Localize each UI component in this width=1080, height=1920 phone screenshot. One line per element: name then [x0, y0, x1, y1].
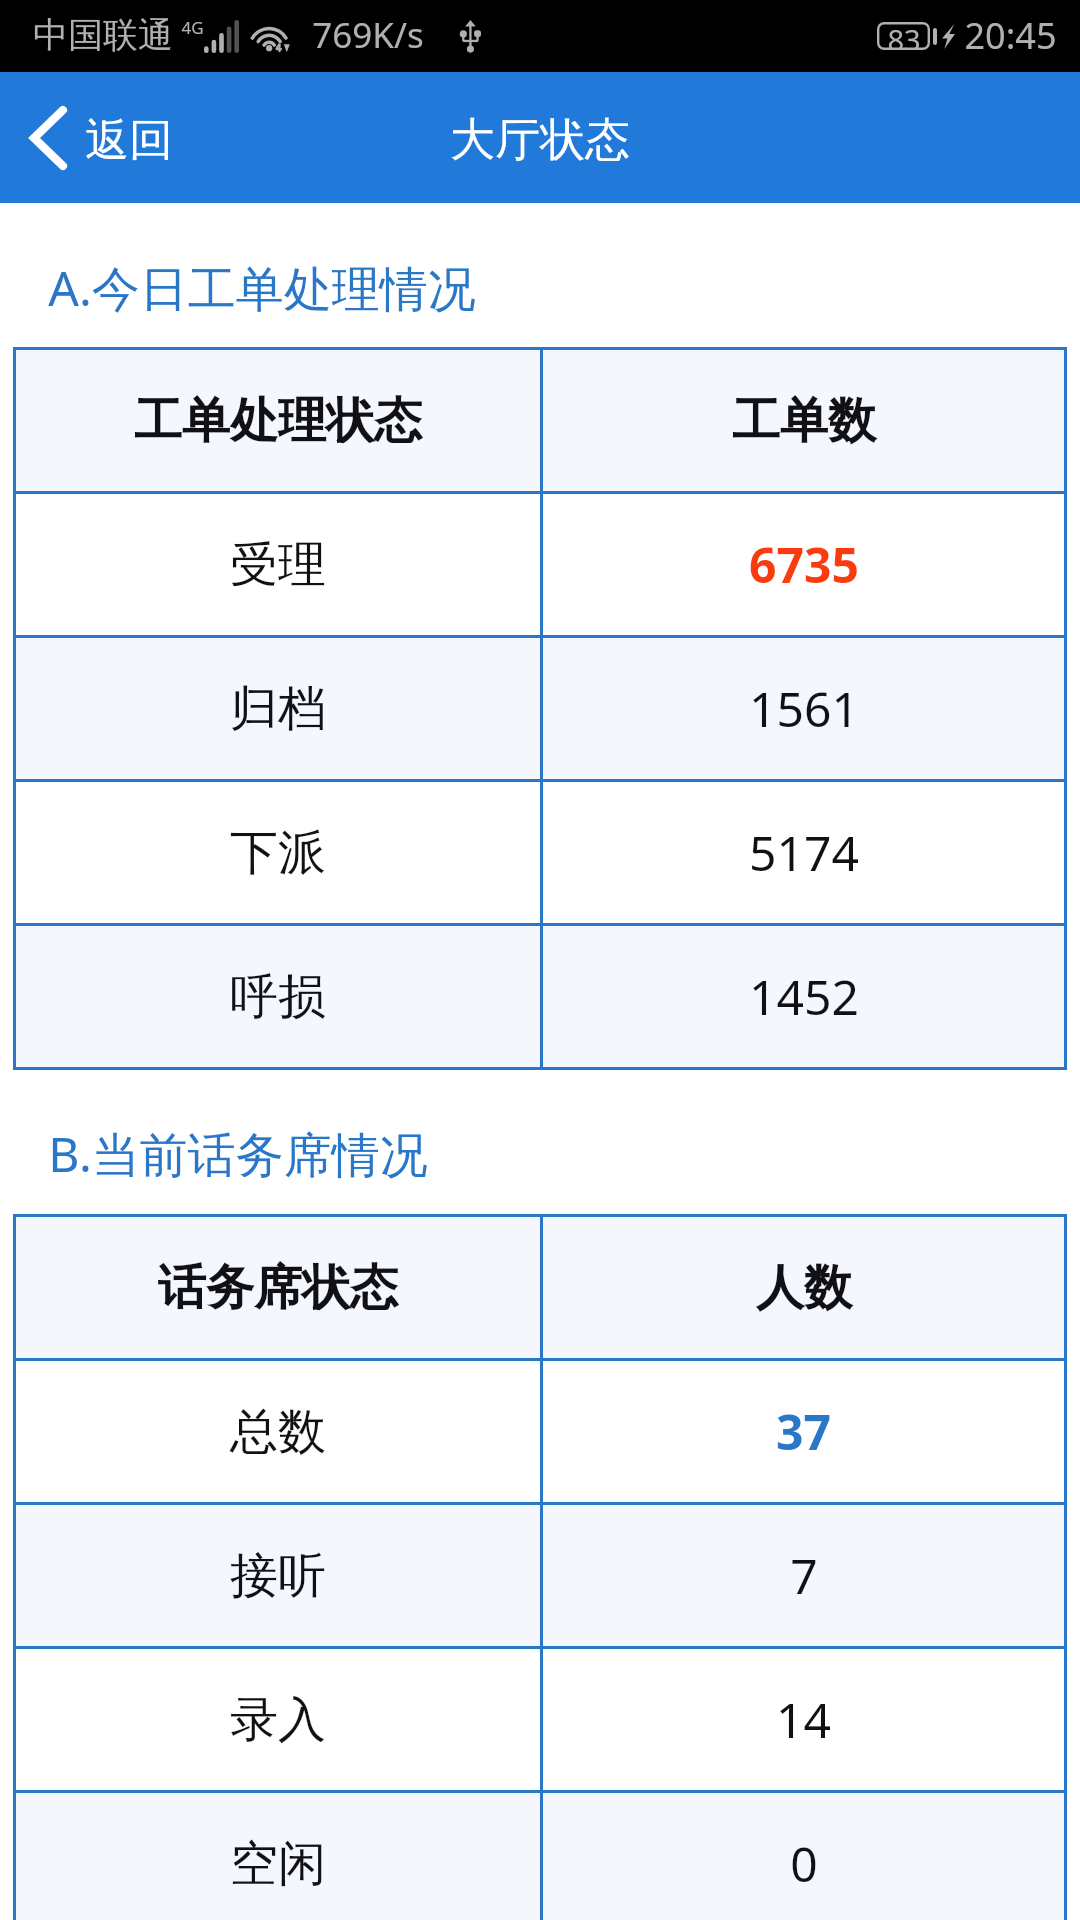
staticText: 83	[887, 20, 921, 48]
staticText: 1561	[749, 676, 859, 741]
staticText: 呼损	[230, 967, 326, 1027]
staticText: 0	[790, 1831, 818, 1896]
staticText: 20:45	[964, 11, 1057, 60]
staticText: 工单处理状态	[134, 391, 422, 451]
staticText: 37	[776, 1399, 831, 1464]
button[interactable]: 返回	[0, 72, 197, 203]
staticText: 769K/s	[312, 11, 424, 59]
other: 返回	[30, 106, 67, 170]
staticText: 6735	[749, 532, 859, 597]
staticText: 受理	[230, 535, 326, 595]
staticText: 下派	[230, 823, 326, 883]
button[interactable]: 总数	[13, 1361, 1067, 1502]
button[interactable]: 接听	[13, 1505, 1067, 1646]
staticText: 工单数	[732, 391, 876, 451]
staticText: 总数	[230, 1402, 326, 1462]
staticText: 4G	[181, 16, 204, 39]
staticText: 归档	[230, 679, 326, 739]
staticText: 录入	[230, 1690, 326, 1750]
button[interactable]: 空闲	[13, 1793, 1067, 1920]
staticText: 7	[790, 1543, 818, 1608]
staticText: 返回	[85, 113, 173, 168]
button[interactable]: 归档	[13, 638, 1067, 779]
staticText: 话务席状态	[158, 1258, 398, 1318]
staticText: 中国联通	[33, 13, 173, 57]
staticText: B.当前话务席情况	[48, 1121, 428, 1187]
button[interactable]: 录入	[13, 1649, 1067, 1790]
staticText: 1452	[749, 964, 859, 1029]
staticText: 接听	[230, 1546, 326, 1606]
button[interactable]: 受理	[13, 494, 1067, 635]
button[interactable]: 话务席状态	[13, 1217, 1067, 1358]
staticText: 空闲	[230, 1834, 326, 1894]
staticText: A.今日工单处理情况	[48, 255, 476, 321]
staticText: 14	[776, 1687, 831, 1752]
staticText: 人数	[756, 1258, 852, 1318]
button[interactable]: 呼损	[13, 926, 1067, 1067]
staticText: 5174	[749, 820, 859, 885]
button[interactable]: 下派	[13, 782, 1067, 923]
staticText: 大厅状态	[450, 112, 630, 169]
button[interactable]: 工单处理状态	[13, 350, 1067, 491]
